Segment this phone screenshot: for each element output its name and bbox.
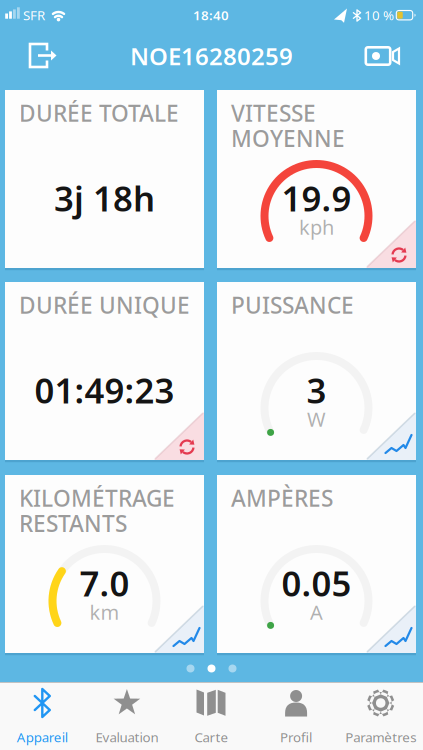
staticText: SFR bbox=[23, 6, 45, 24]
button[interactable]: Log out bbox=[0, 28, 80, 82]
button[interactable]: KILOMÉTRAGE RESTANTS bbox=[5, 475, 204, 653]
staticText: 7.0 bbox=[79, 560, 129, 606]
button[interactable]: PUISSANCE bbox=[217, 282, 416, 460]
staticText: NOE16280259 bbox=[130, 40, 293, 72]
staticText: DURÉE TOTALE bbox=[19, 98, 179, 128]
staticText: 19.9 bbox=[281, 175, 351, 221]
staticText: 10 % bbox=[364, 6, 394, 24]
staticText: DURÉE UNIQUE bbox=[19, 290, 190, 320]
staticText: Carte bbox=[194, 728, 228, 746]
staticText: KILOMÉTRAGE RESTANTS bbox=[19, 483, 175, 538]
staticText: Evaluation bbox=[95, 728, 158, 746]
staticText: W bbox=[307, 406, 326, 432]
staticText: km bbox=[89, 599, 119, 625]
button[interactable]: DURÉE UNIQUE bbox=[5, 282, 204, 460]
button[interactable]: Appareil bbox=[0, 682, 85, 750]
button[interactable]: Camera bbox=[343, 28, 423, 82]
staticText: AMPÈRES bbox=[231, 483, 333, 513]
staticText: Appareil bbox=[17, 728, 68, 746]
button[interactable]: AMPÈRES bbox=[217, 475, 416, 653]
staticText: Profil bbox=[280, 728, 312, 746]
button[interactable]: Profil bbox=[254, 682, 338, 750]
staticText: PUISSANCE bbox=[231, 290, 354, 320]
staticText: Paramètres bbox=[345, 728, 416, 746]
button[interactable]: Carte bbox=[169, 682, 254, 750]
staticText: VITESSE MOYENNE bbox=[231, 98, 345, 153]
staticText: 01:49:23 bbox=[34, 367, 174, 413]
staticText: 3 bbox=[306, 367, 326, 413]
button[interactable]: DURÉE TOTALE bbox=[5, 90, 204, 268]
staticText: 18:40 bbox=[193, 6, 229, 24]
staticText: 0.05 bbox=[281, 560, 351, 606]
staticText: kph bbox=[299, 214, 334, 240]
button[interactable]: VITESSE MOYENNE bbox=[217, 90, 416, 268]
button[interactable]: Paramètres bbox=[338, 682, 423, 750]
staticText: A bbox=[310, 599, 323, 625]
staticText: 3j 18h bbox=[54, 175, 155, 221]
button[interactable]: Evaluation bbox=[85, 682, 169, 750]
